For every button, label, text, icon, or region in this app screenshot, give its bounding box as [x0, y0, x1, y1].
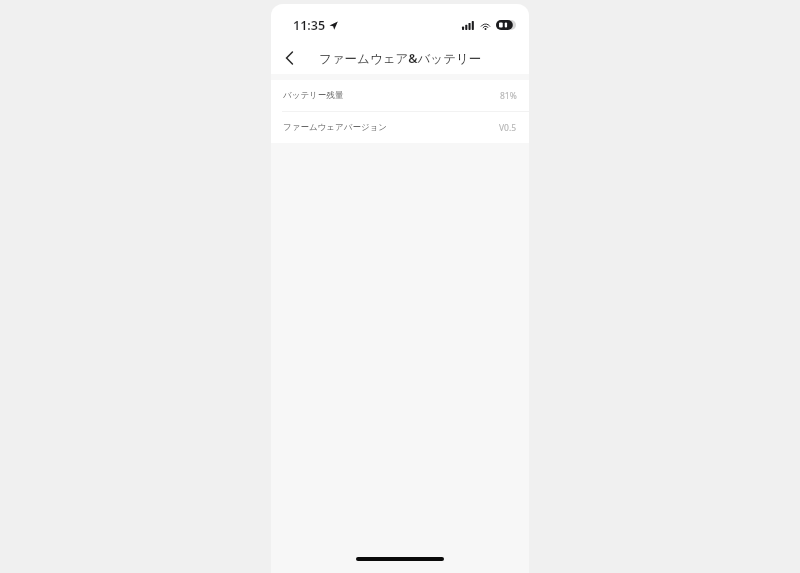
- staticText: ファームウェアバージョン: [283, 122, 387, 133]
- staticText: 81%: [500, 90, 517, 102]
- staticText: バッテリー残量: [283, 90, 344, 101]
- button[interactable]: バッテリー残量: [271, 80, 529, 111]
- button[interactable]: ファームウェアバージョン: [271, 112, 529, 143]
- staticText: ファームウェア&バッテリー: [319, 50, 482, 67]
- staticText: 11:35: [293, 17, 326, 34]
- staticText: V0.5: [499, 122, 517, 134]
- button[interactable]: Back: [271, 42, 307, 74]
